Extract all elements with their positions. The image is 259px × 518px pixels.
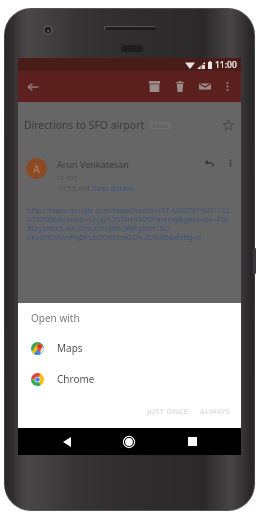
button[interactable]: Delete: [168, 71, 192, 102]
staticText: JUST ONCE: [147, 406, 189, 416]
button[interactable]: Mark unread: [193, 71, 217, 102]
button[interactable]: Star: [218, 115, 238, 135]
staticText: Chrome: [57, 372, 95, 386]
staticText: Directions to SFO airport: [24, 118, 145, 132]
button[interactable]: More options: [220, 153, 240, 173]
button[interactable]: Archive: [142, 71, 166, 102]
button[interactable]: Back: [49, 428, 85, 455]
button[interactable]: Recent apps: [174, 428, 210, 455]
staticText: http://maps.google.com/maps?saddr=(37.42…: [27, 205, 233, 242]
staticText: Open with: [31, 311, 80, 325]
button[interactable]: Maps: [18, 335, 241, 361]
staticText: Maps: [57, 341, 83, 355]
button[interactable]: JUST ONCE: [142, 402, 194, 420]
button[interactable]: More options: [217, 71, 237, 102]
staticText: 10:59 AM: [57, 183, 92, 193]
staticText: Arun Venkatesan: [57, 158, 129, 170]
button[interactable]: Navigate up: [21, 71, 45, 102]
staticText: Inbox: [152, 122, 169, 129]
button[interactable]: ALWAYS: [195, 402, 236, 420]
button[interactable]: Chrome: [18, 366, 241, 392]
staticText: A: [33, 161, 41, 176]
staticText: ALWAYS: [200, 406, 231, 416]
staticText: 11:00: [215, 59, 237, 71]
button[interactable]: Reply: [199, 153, 219, 173]
button[interactable]: Home: [111, 428, 147, 455]
staticText: View details: [92, 183, 134, 193]
staticText: to me: [57, 172, 78, 182]
